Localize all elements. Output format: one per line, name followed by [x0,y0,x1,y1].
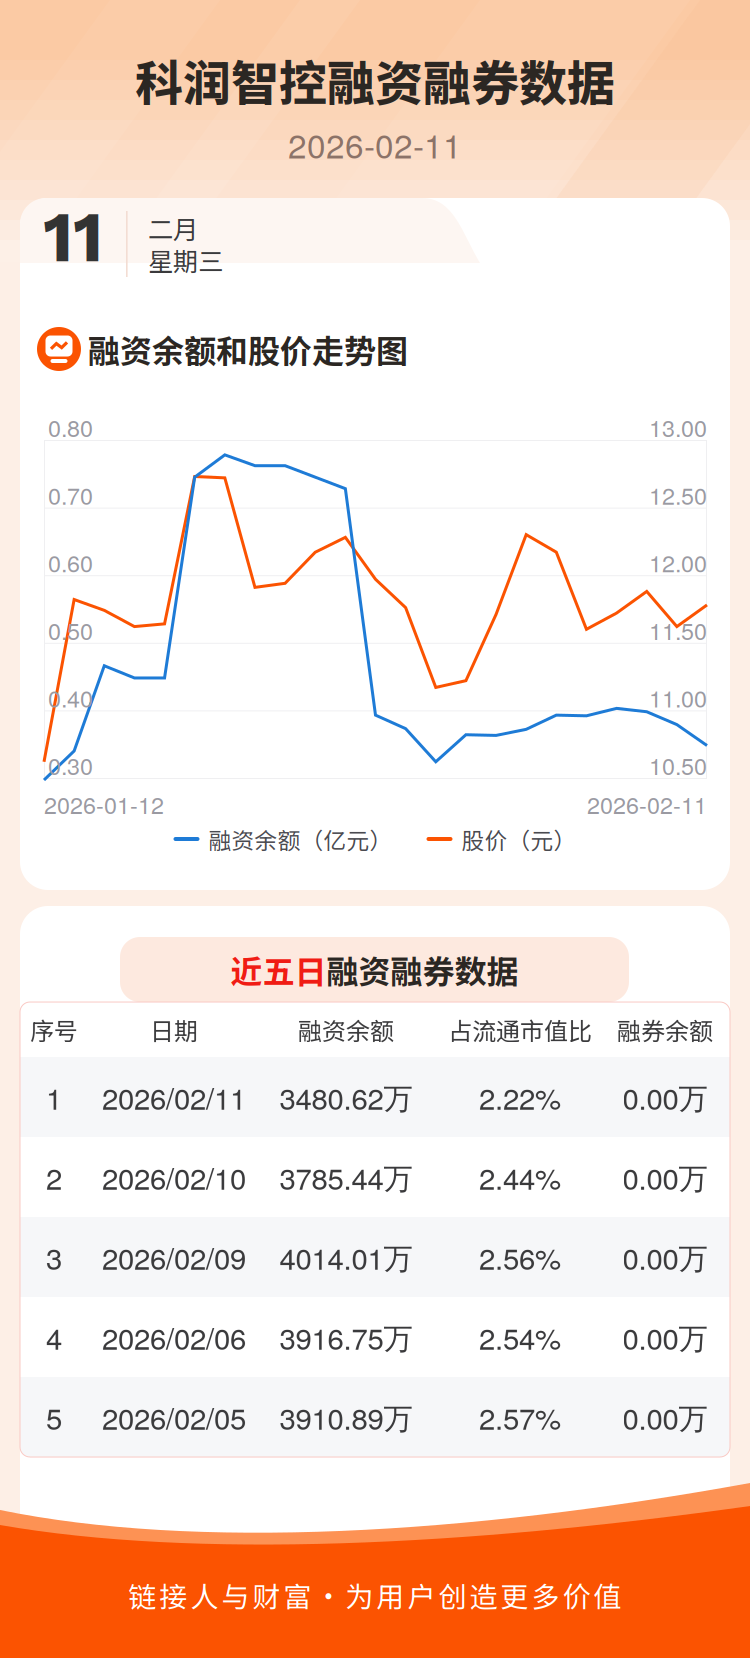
staticText: 融资融券数据 [326,946,518,993]
staticText: 0.00万 [622,1396,707,1438]
staticText: 2026/02/10 [102,1156,246,1198]
staticText: 4 [46,1316,62,1358]
staticText: 星期三 [148,242,223,278]
staticText: 科润智控融资融券数据 [135,45,615,115]
staticText: 序号 [30,1012,78,1047]
staticText: 5 [46,1396,62,1438]
staticText: 2026-01-12 [44,787,164,821]
staticText: 12.50 [649,478,707,511]
staticText: 0.60 [48,545,93,579]
staticText: 0.50 [48,613,93,646]
staticText: 3910.89万 [279,1396,412,1438]
staticText: 2.54% [479,1316,561,1358]
staticText: 0.80 [48,410,93,444]
staticText: 0.00万 [622,1156,707,1198]
staticText: 3785.44万 [279,1156,412,1198]
staticText: 13.00 [649,410,707,444]
staticText: 2.22% [479,1076,561,1118]
staticText: 占流通市值比 [448,1012,592,1047]
staticText: 近五日 [230,946,326,993]
staticText: 融资余额 [298,1012,394,1047]
staticText: 融资余额（亿元） [208,823,392,855]
staticText: 3916.75万 [279,1316,412,1358]
staticText: 12.00 [649,545,707,579]
staticText: 0.40 [48,681,93,714]
staticText: 2 [46,1156,62,1198]
staticText: 0.00万 [622,1316,707,1358]
staticText: 2026/02/06 [102,1316,246,1358]
staticText: 3480.62万 [279,1076,412,1118]
staticText: 0.00万 [622,1076,707,1118]
staticText: 0.30 [48,748,93,782]
staticText: 1 [46,1076,62,1118]
staticText: 2026/02/05 [102,1396,246,1438]
staticText: 2026-02-11 [587,787,707,821]
staticText: 0.70 [48,478,93,511]
staticText: 0.00万 [622,1236,707,1278]
staticText: 11.50 [649,613,707,646]
staticText: 11 [43,196,103,278]
staticText: 2026/02/09 [102,1236,246,1278]
staticText: 股价（元） [461,823,576,855]
staticText: 11.00 [649,681,707,714]
staticText: 链接人与财富·为用户创造更多价值 [128,1575,621,1615]
staticText: 10.50 [649,748,707,782]
staticText: 2.56% [479,1236,561,1278]
staticText: 日期 [150,1012,198,1047]
staticText: 2.44% [479,1156,561,1198]
staticText: 二月 [148,210,198,246]
staticText: 2026-02-11 [288,120,462,168]
staticText: 融券余额 [617,1012,713,1047]
staticText: 融资余额和股价走势图 [88,326,408,372]
staticText: 2026/02/11 [102,1076,246,1118]
staticText: 2.57% [479,1396,561,1438]
staticText: 3 [46,1236,62,1278]
staticText: 4014.01万 [279,1236,412,1278]
